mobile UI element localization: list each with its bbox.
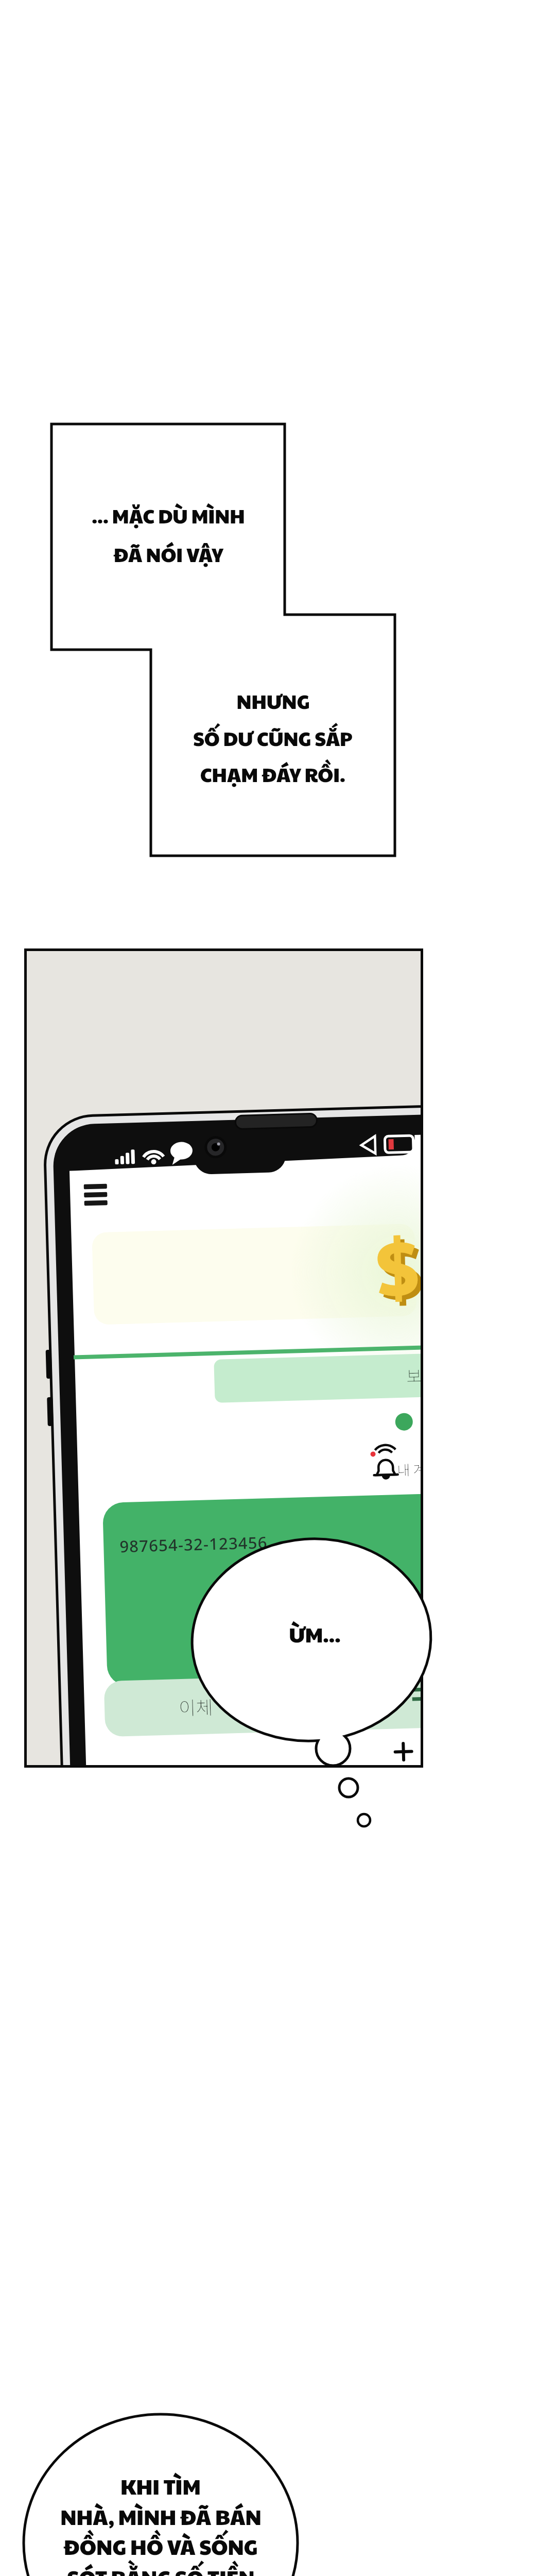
staticText: 보유 계좌: [406, 1362, 423, 1387]
button[interactable]: [389, 1737, 418, 1766]
staticText: SÓT BẰNG SỐ TIỀN: [67, 2562, 255, 2576]
staticText: NHƯNG: [236, 687, 310, 715]
button[interactable]: [92, 1224, 417, 1325]
staticText: ... MẶC DÙ MÌNH: [92, 502, 245, 529]
staticText: 987654-32-123456: [119, 1531, 268, 1557]
staticText: ĐÃ NÓI VẬY: [113, 540, 223, 568]
staticText: KHI TÌM: [120, 2471, 201, 2500]
staticText: NHÀ, MÌNH ĐÃ BÁN: [60, 2501, 262, 2531]
staticText: SỐ DƯ CŨNG SẮP: [193, 724, 353, 752]
staticText: $: [375, 1209, 420, 1317]
staticText: ĐỒNG HỒ VÀ SỐNG: [63, 2531, 258, 2561]
staticText: 이체: [178, 1693, 214, 1720]
staticText: CHẠM ĐÁY RỒI.: [200, 760, 345, 788]
button[interactable]: [104, 1672, 423, 1737]
button[interactable]: [102, 1493, 423, 1686]
staticText: 내 계좌: [397, 1458, 423, 1480]
staticText: ỪM...: [289, 1619, 341, 1648]
staticText: $: [379, 1213, 423, 1321]
button[interactable]: [214, 1353, 423, 1403]
button[interactable]: [79, 1177, 112, 1212]
